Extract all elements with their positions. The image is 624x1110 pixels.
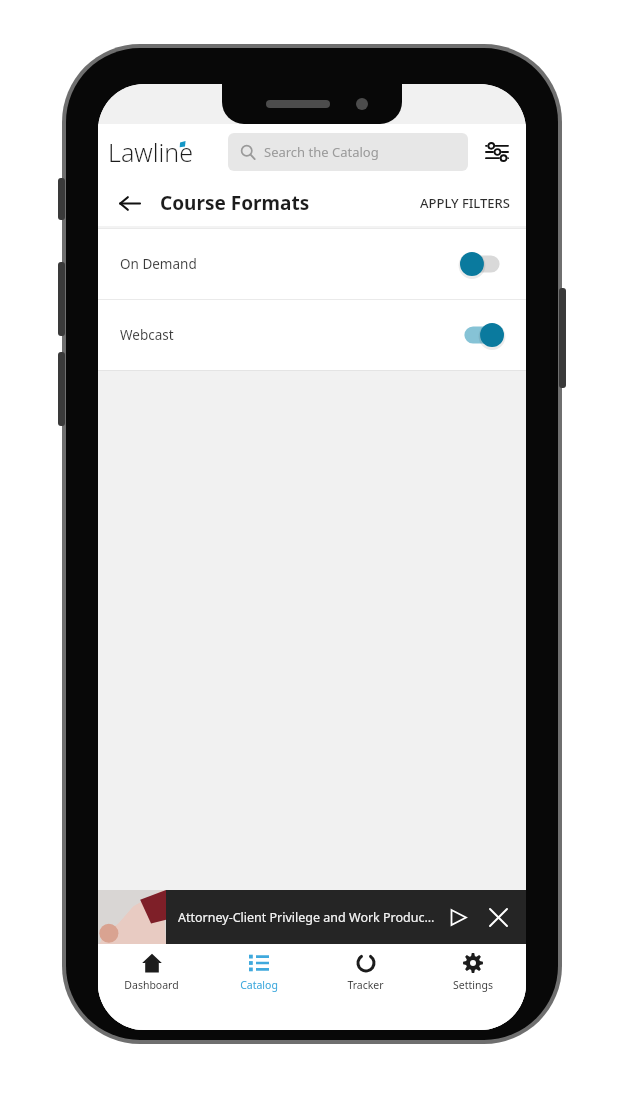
button[interactable]: Dashboard <box>98 944 205 1000</box>
staticText: Dashboard <box>124 978 179 992</box>
button[interactable]: Search the Catalog <box>228 133 468 171</box>
staticText: Tracker <box>347 978 384 992</box>
button[interactable]: Settings <box>419 944 526 1000</box>
staticText: On Demand <box>120 255 197 273</box>
button[interactable]: Close player <box>478 897 518 937</box>
button[interactable]: Tracker <box>312 944 419 1000</box>
button[interactable]: Back <box>110 184 148 222</box>
staticText: Course Formats <box>160 190 310 216</box>
button[interactable]: On Demand <box>98 229 526 299</box>
staticText: Webcast <box>120 326 174 344</box>
staticText: Catalog <box>240 978 278 992</box>
button[interactable]: Catalog <box>205 944 312 1000</box>
button[interactable]: Attorney-Client Privilege and Work Produ… <box>98 890 526 944</box>
staticText: Attorney-Client Privilege and Work Produ… <box>178 909 438 926</box>
staticText: Search the Catalog <box>264 143 379 161</box>
staticText: Settings <box>453 978 493 992</box>
button[interactable]: APPLY FILTERS <box>416 188 514 218</box>
button[interactable]: Play <box>438 897 478 937</box>
button[interactable]: Webcast <box>98 300 526 370</box>
staticText: APPLY FILTERS <box>420 194 510 212</box>
button[interactable]: Filter options <box>478 133 516 171</box>
staticText: Lawline <box>108 135 193 169</box>
